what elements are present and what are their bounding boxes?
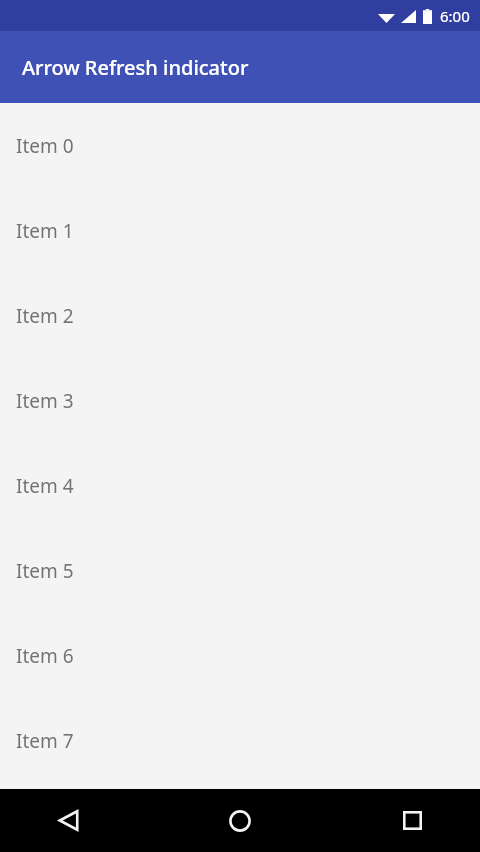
button[interactable]: Item 3 bbox=[0, 358, 480, 443]
staticText: Item 1 bbox=[16, 218, 74, 244]
button[interactable]: Item 5 bbox=[0, 528, 480, 613]
staticText: Item 6 bbox=[16, 643, 74, 669]
button[interactable]: Item 6 bbox=[0, 613, 480, 698]
staticText: Item 0 bbox=[16, 133, 74, 159]
button[interactable]: Item 0 bbox=[0, 103, 480, 188]
button[interactable]: Item 4 bbox=[0, 443, 480, 528]
button[interactable]: Item 1 bbox=[0, 188, 480, 273]
staticText: 6:00 bbox=[440, 6, 470, 26]
button[interactable]: Recent apps bbox=[320, 789, 480, 852]
button[interactable]: Item 7 bbox=[0, 698, 480, 783]
staticText: Arrow Refresh indicator bbox=[22, 54, 249, 81]
button[interactable]: Back bbox=[0, 789, 160, 852]
staticText: Item 3 bbox=[16, 388, 74, 414]
staticText: Item 5 bbox=[16, 558, 74, 584]
staticText: Item 2 bbox=[16, 303, 74, 329]
staticText: Item 4 bbox=[16, 473, 74, 499]
button[interactable]: Item 2 bbox=[0, 273, 480, 358]
staticText: Item 7 bbox=[16, 728, 74, 754]
button[interactable]: Home bbox=[160, 789, 320, 852]
